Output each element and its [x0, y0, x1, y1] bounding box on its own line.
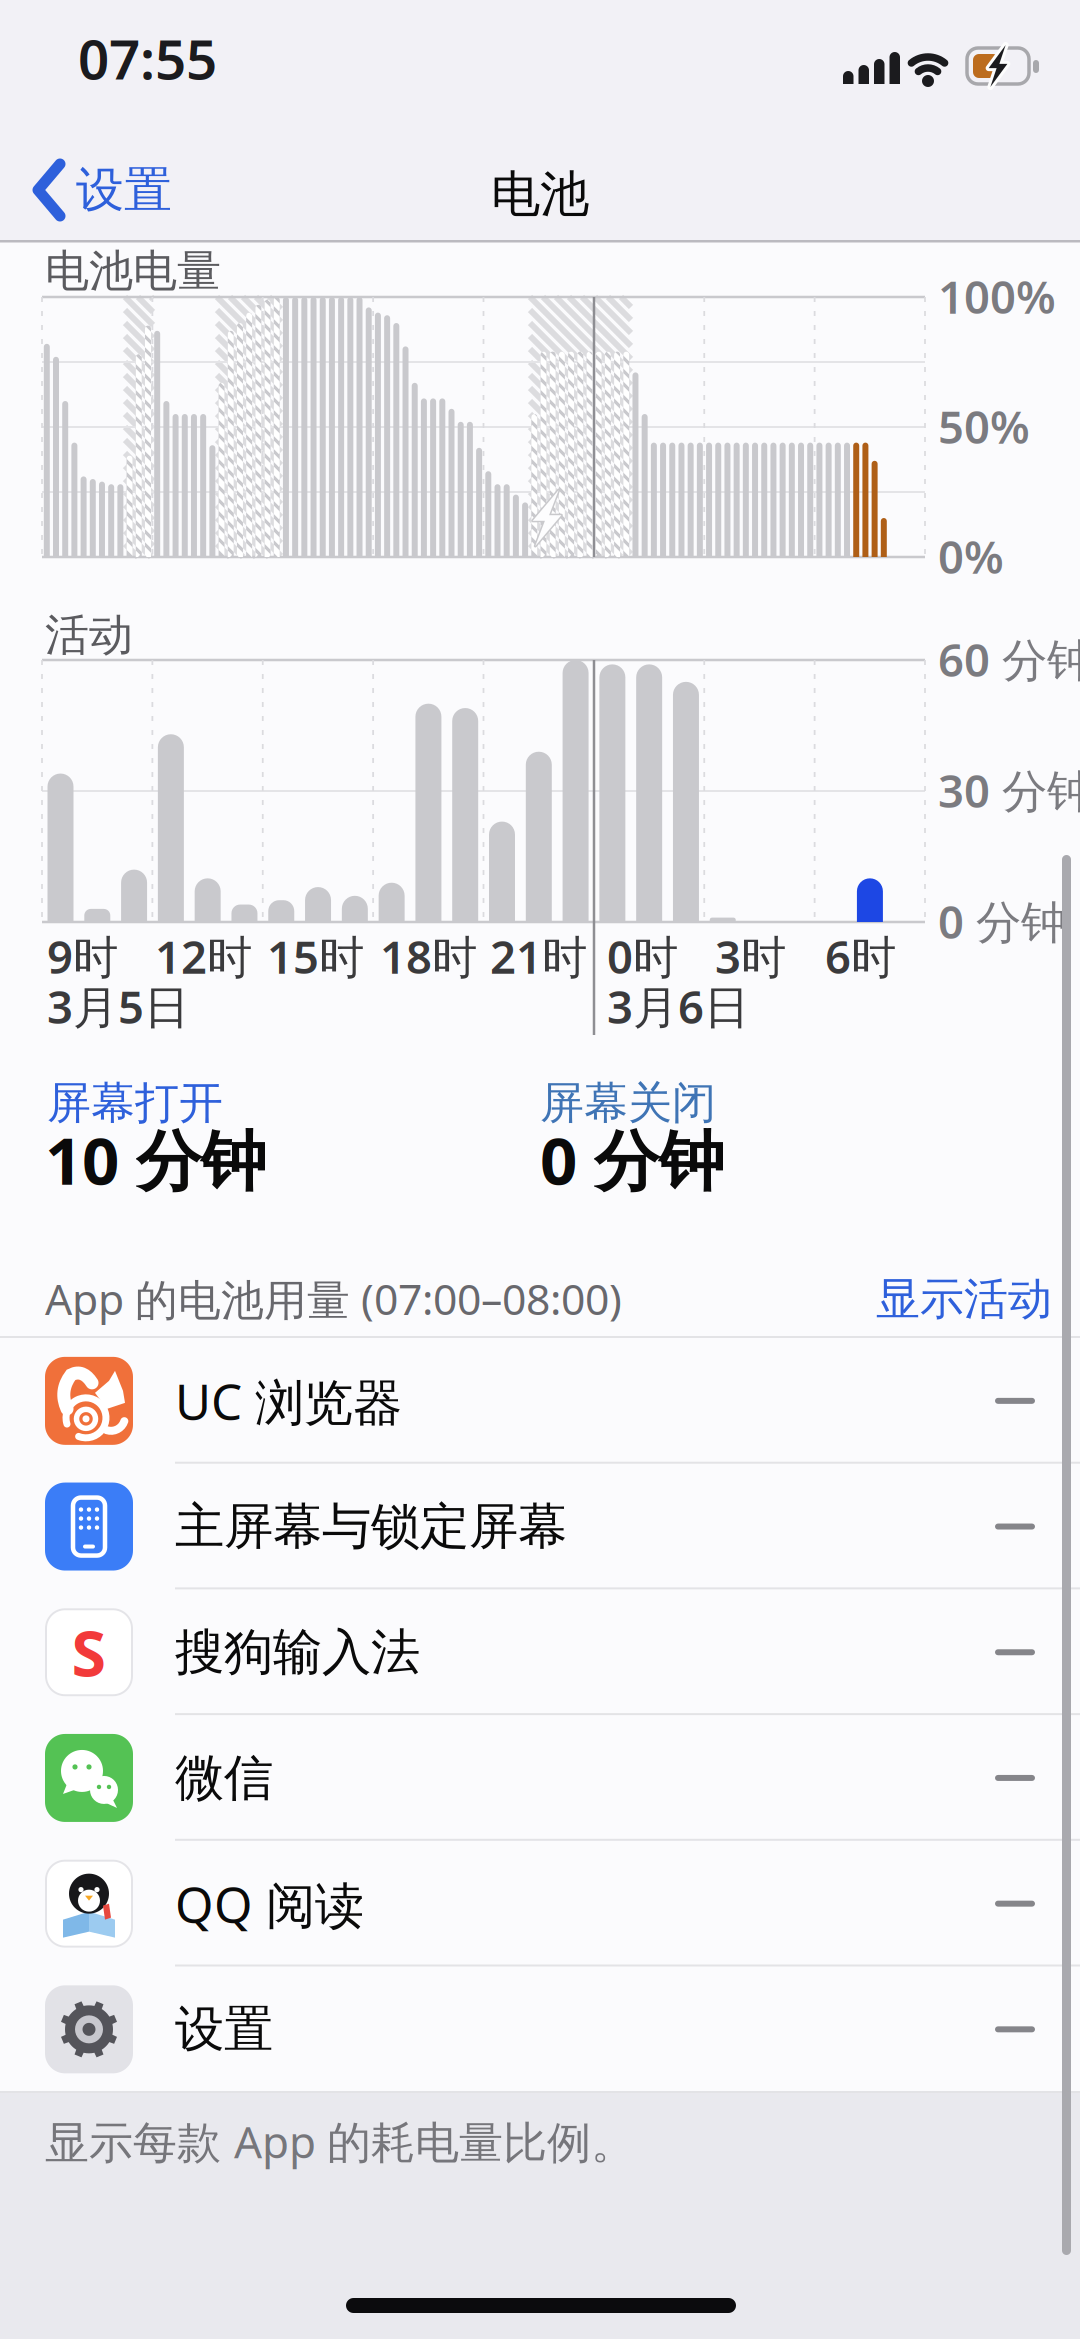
- staticText: 主屏幕与锁定屏幕: [175, 1496, 567, 1557]
- staticText: QQ 阅读: [175, 1871, 364, 1937]
- staticText: 3月6日: [607, 976, 749, 1036]
- button[interactable]: S: [0, 1589, 1080, 1715]
- staticText: 设置: [76, 160, 172, 219]
- staticText: 50%: [938, 396, 1030, 456]
- staticText: App 的电池用量 (07:00–08:00): [45, 1270, 622, 1327]
- staticText: 电池电量: [45, 244, 221, 298]
- staticText: 12时: [155, 926, 252, 986]
- staticText: 3月5日: [47, 976, 189, 1036]
- staticText: 微信: [175, 1748, 273, 1808]
- staticText: 9时: [47, 926, 118, 986]
- staticText: 3时: [715, 926, 786, 986]
- staticText: 屏幕打开: [47, 1076, 223, 1130]
- button[interactable]: QQ 阅读: [0, 1841, 1080, 1966]
- button[interactable]: 微信: [0, 1715, 1080, 1841]
- staticText: UC 浏览器: [175, 1368, 402, 1434]
- staticText: 电池: [491, 164, 589, 225]
- staticText: S: [71, 1611, 106, 1694]
- staticText: 30 分钟: [938, 760, 1080, 820]
- button[interactable]: UC 浏览器: [0, 1338, 1080, 1464]
- staticText: 10 分钟: [45, 1116, 266, 1203]
- staticText: 活动: [45, 608, 133, 662]
- staticText: 显示活动: [876, 1272, 1052, 1326]
- staticText: 0 分钟: [540, 1116, 724, 1203]
- staticText: 0 分钟: [938, 891, 1066, 951]
- staticText: 15时: [267, 926, 364, 986]
- button[interactable]: 显示活动: [876, 1272, 1052, 1326]
- staticText: 60 分钟: [938, 629, 1080, 689]
- staticText: 设置: [175, 1999, 273, 2060]
- staticText: 100%: [938, 266, 1056, 326]
- staticText: 07:55: [78, 22, 217, 95]
- button[interactable]: 设置: [0, 1966, 1080, 2092]
- staticText: 21时: [490, 926, 587, 986]
- staticText: 显示每款 App 的耗电量比例。: [45, 2112, 635, 2170]
- staticText: 0%: [938, 526, 1004, 586]
- staticText: 18时: [380, 926, 477, 986]
- button[interactable]: 主屏幕与锁定屏幕: [0, 1464, 1080, 1589]
- button[interactable]: 设置: [32, 160, 172, 220]
- staticText: 6时: [825, 926, 896, 986]
- staticText: 屏幕关闭: [540, 1076, 716, 1130]
- staticText: 搜狗输入法: [175, 1622, 420, 1683]
- staticText: 0时: [607, 926, 678, 986]
